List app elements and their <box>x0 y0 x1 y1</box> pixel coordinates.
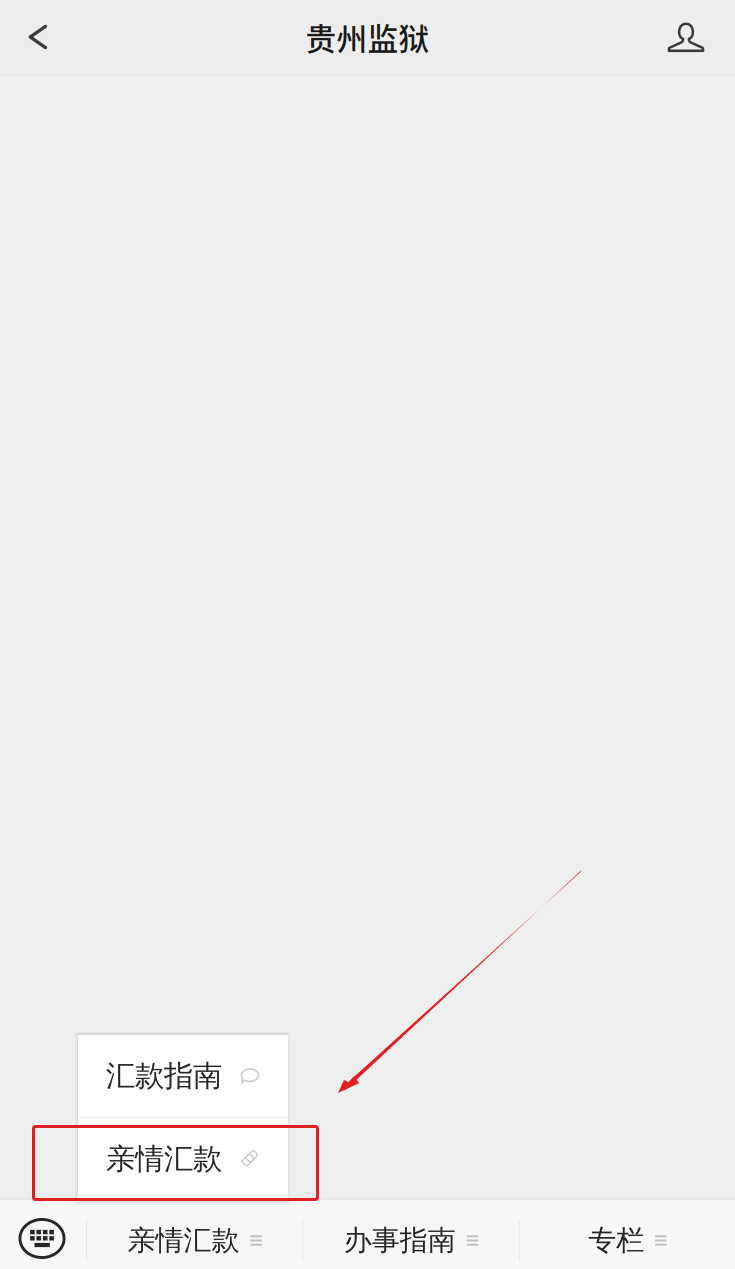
button[interactable]: 办事指南 <box>303 1200 519 1269</box>
staticText: 亲情汇款 <box>127 1223 239 1258</box>
button[interactable]: 汇款指南 <box>78 1035 288 1117</box>
button[interactable]: Keyboard <box>0 1200 86 1269</box>
staticText: 汇款指南 <box>106 1058 222 1094</box>
staticText: 办事指南 <box>344 1223 456 1258</box>
button[interactable]: Contact <box>637 0 735 74</box>
button[interactable]: 亲情汇款 <box>87 1200 302 1269</box>
button[interactable]: 专栏 <box>520 1200 735 1269</box>
button[interactable]: 亲情汇款 <box>78 1118 288 1200</box>
button[interactable]: Back <box>0 0 76 74</box>
staticText: 亲情汇款 <box>106 1141 222 1177</box>
staticText: 贵州监狱 <box>305 15 429 59</box>
staticText: 专栏 <box>588 1223 644 1258</box>
